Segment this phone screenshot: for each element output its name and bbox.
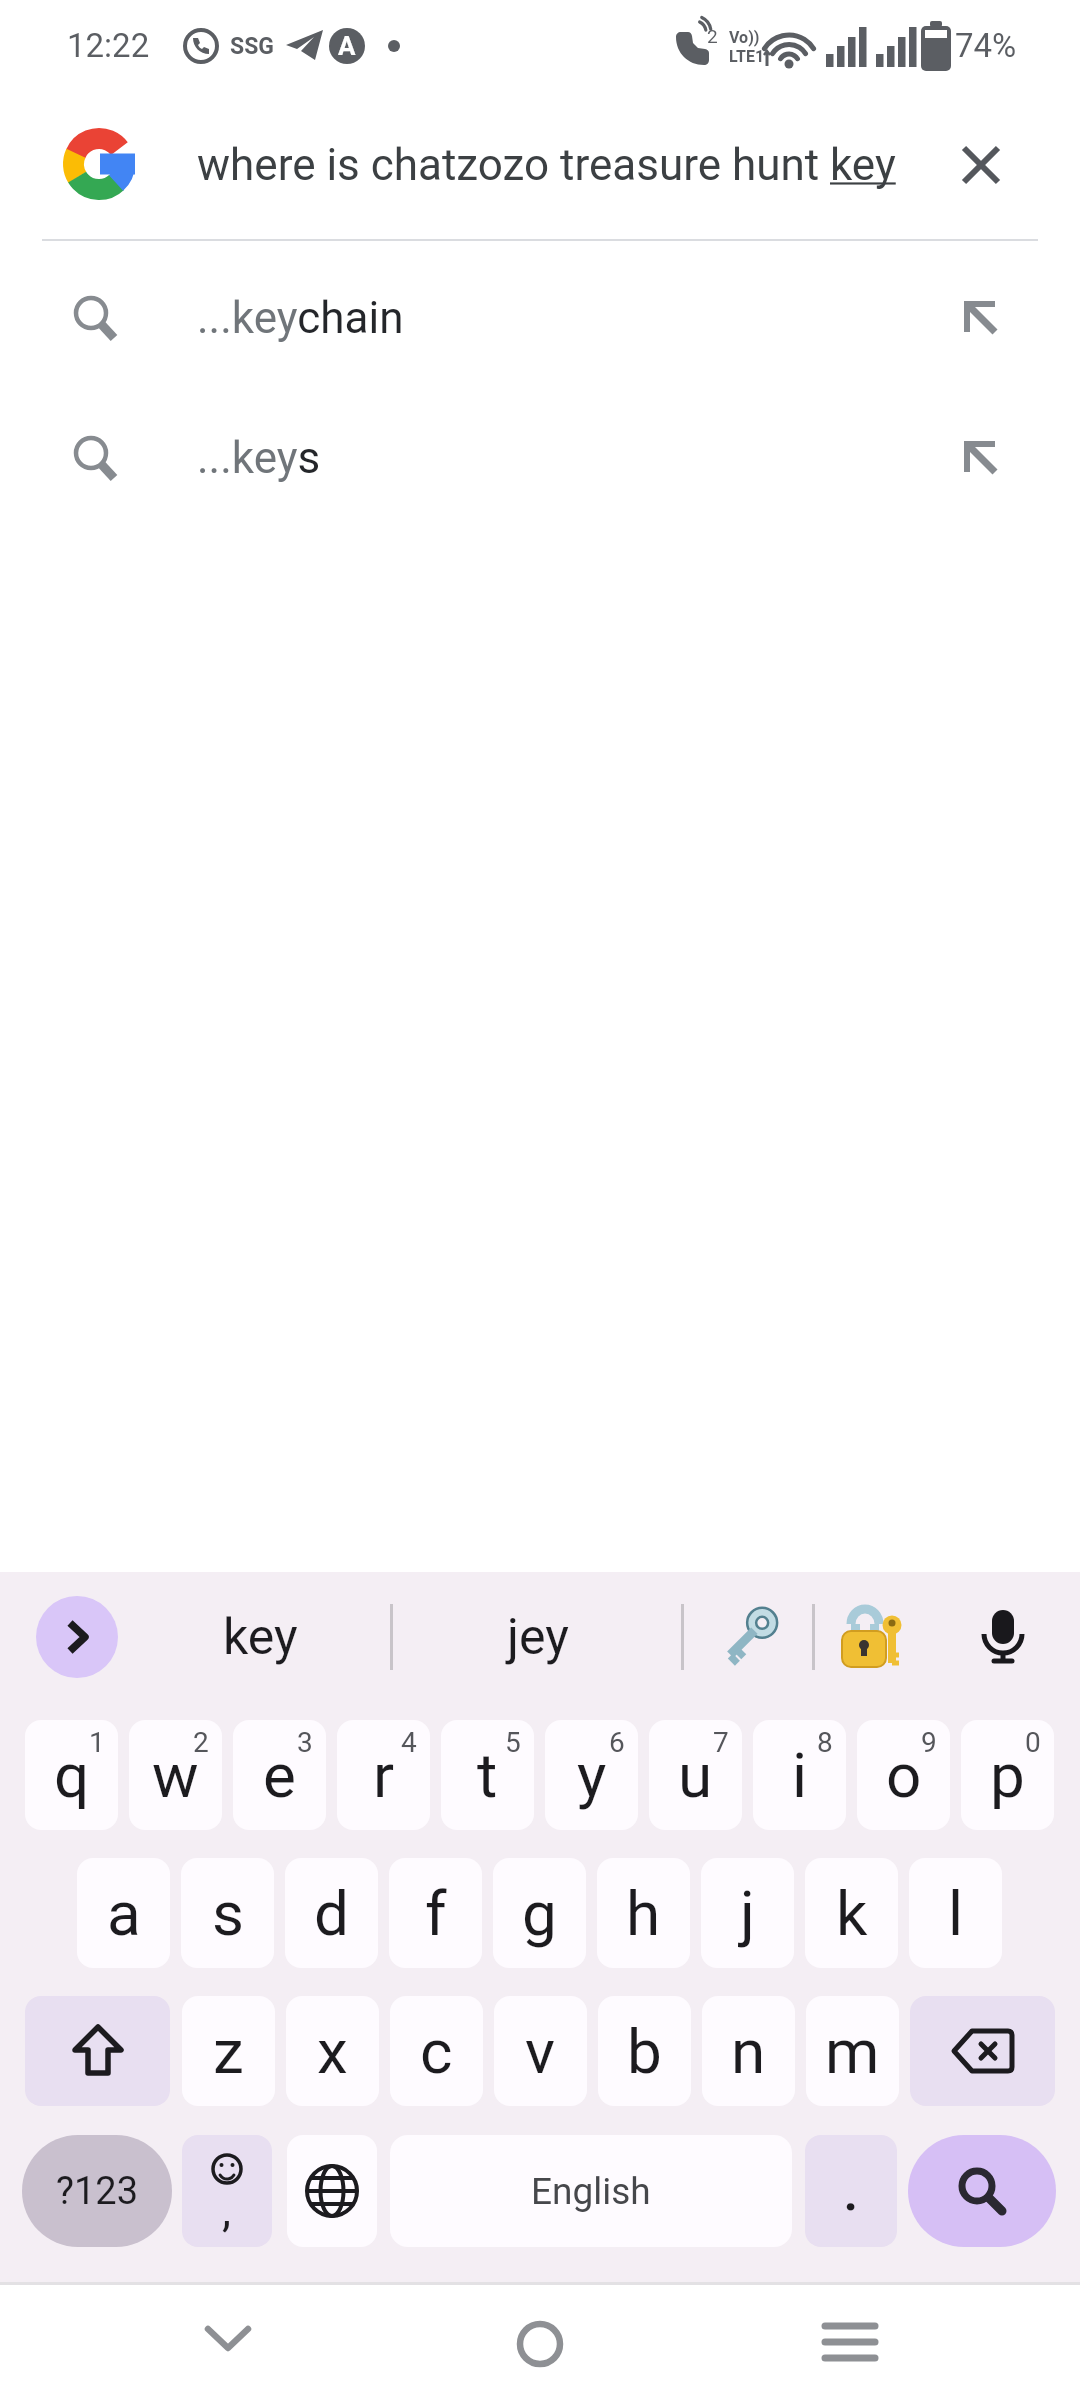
- staticText: .: [843, 2158, 859, 2224]
- staticText: d: [314, 1877, 349, 1950]
- button[interactable]: [36, 1596, 118, 1678]
- staticText: j: [740, 1877, 755, 1950]
- staticText: 6: [609, 1726, 625, 1759]
- button[interactable]: ...keychain: [0, 248, 1080, 388]
- staticText: q: [54, 1739, 90, 1812]
- staticText: jey: [507, 1608, 569, 1667]
- button[interactable]: key: [150, 1596, 370, 1678]
- button[interactable]: f: [389, 1858, 482, 1968]
- staticText: i: [792, 1739, 808, 1812]
- button[interactable]: u: [649, 1720, 742, 1830]
- button[interactable]: c: [390, 1996, 483, 2106]
- button[interactable]: s: [181, 1858, 274, 1968]
- button[interactable]: [910, 1996, 1055, 2106]
- staticText: ...keychain: [197, 292, 404, 344]
- button[interactable]: q: [25, 1720, 118, 1830]
- button[interactable]: ...keys: [0, 388, 1080, 528]
- staticText: Vo)): [729, 28, 760, 47]
- staticText: m: [825, 2015, 880, 2088]
- staticText: r: [373, 1739, 395, 1812]
- staticText: 9: [921, 1726, 937, 1759]
- button[interactable]: j: [701, 1858, 794, 1968]
- button[interactable]: [193, 2304, 263, 2374]
- staticText: s: [212, 1877, 244, 1950]
- button[interactable]: e: [233, 1720, 326, 1830]
- button[interactable]: .: [805, 2135, 897, 2247]
- staticText: 3: [297, 1726, 313, 1759]
- button[interactable]: [944, 128, 1018, 202]
- button[interactable]: p: [961, 1720, 1054, 1830]
- staticText: o: [886, 1739, 922, 1812]
- staticText: ...keys: [197, 432, 321, 484]
- staticText: SSG: [230, 33, 274, 60]
- staticText: g: [522, 1877, 557, 1950]
- button[interactable]: ?123: [22, 2135, 172, 2247]
- button[interactable]: v: [494, 1996, 587, 2106]
- button[interactable]: a: [77, 1858, 170, 1968]
- staticText: b: [627, 2015, 662, 2088]
- staticText: 4: [401, 1726, 417, 1759]
- staticText: ?123: [56, 2169, 139, 2214]
- staticText: 5: [505, 1726, 521, 1759]
- staticText: y: [577, 1739, 607, 1812]
- staticText: w: [152, 1739, 199, 1812]
- staticText: f: [425, 1877, 447, 1950]
- button[interactable]: g: [493, 1858, 586, 1968]
- staticText: 1: [89, 1726, 105, 1759]
- staticText: n: [731, 2015, 766, 2088]
- button[interactable]: k: [805, 1858, 898, 1968]
- staticText: 2: [707, 25, 718, 47]
- button[interactable]: [948, 1596, 1058, 1678]
- button[interactable]: b: [598, 1996, 691, 2106]
- button[interactable]: ,: [182, 2135, 272, 2247]
- staticText: t: [477, 1739, 498, 1812]
- staticText: where is chatzozo treasure hunt key: [197, 139, 896, 191]
- button[interactable]: y: [545, 1720, 638, 1830]
- button[interactable]: [908, 2135, 1056, 2247]
- staticText: 7: [713, 1726, 729, 1759]
- staticText: k: [836, 1877, 868, 1950]
- staticText: e: [263, 1739, 296, 1812]
- button[interactable]: [706, 1596, 790, 1678]
- button[interactable]: x: [286, 1996, 379, 2106]
- button[interactable]: [815, 2309, 885, 2379]
- button[interactable]: i: [753, 1720, 846, 1830]
- staticText: key: [223, 1608, 298, 1667]
- staticText: LTE1: [729, 47, 765, 66]
- staticText: ,: [222, 2183, 232, 2237]
- button[interactable]: jey: [420, 1596, 655, 1678]
- staticText: x: [317, 2015, 348, 2088]
- staticText: 12:22: [67, 26, 150, 65]
- button[interactable]: d: [285, 1858, 378, 1968]
- button[interactable]: [287, 2135, 377, 2247]
- button[interactable]: [505, 2309, 575, 2379]
- staticText: z: [213, 2015, 244, 2088]
- staticText: c: [420, 2015, 453, 2088]
- button[interactable]: r: [337, 1720, 430, 1830]
- button[interactable]: m: [806, 1996, 899, 2106]
- button[interactable]: l: [909, 1858, 1002, 1968]
- staticText: 8: [817, 1726, 833, 1759]
- staticText: l: [948, 1877, 964, 1950]
- button[interactable]: w: [129, 1720, 222, 1830]
- staticText: 2: [193, 1726, 209, 1759]
- button[interactable]: h: [597, 1858, 690, 1968]
- button[interactable]: n: [702, 1996, 795, 2106]
- button[interactable]: English: [390, 2135, 792, 2247]
- staticText: 74%: [955, 26, 1017, 65]
- button[interactable]: [828, 1596, 918, 1678]
- button[interactable]: t: [441, 1720, 534, 1830]
- staticText: h: [626, 1877, 661, 1950]
- staticText: u: [678, 1739, 713, 1812]
- button[interactable]: o: [857, 1720, 950, 1830]
- staticText: English: [531, 2170, 651, 2213]
- button[interactable]: [25, 1996, 170, 2106]
- button[interactable]: z: [182, 1996, 275, 2106]
- staticText: p: [990, 1739, 1025, 1812]
- staticText: a: [107, 1877, 141, 1950]
- staticText: 0: [1025, 1726, 1041, 1759]
- staticText: v: [525, 2015, 556, 2088]
- button[interactable]: where is chatzozo treasure hunt key: [0, 96, 1080, 234]
- staticText: A: [338, 31, 356, 61]
